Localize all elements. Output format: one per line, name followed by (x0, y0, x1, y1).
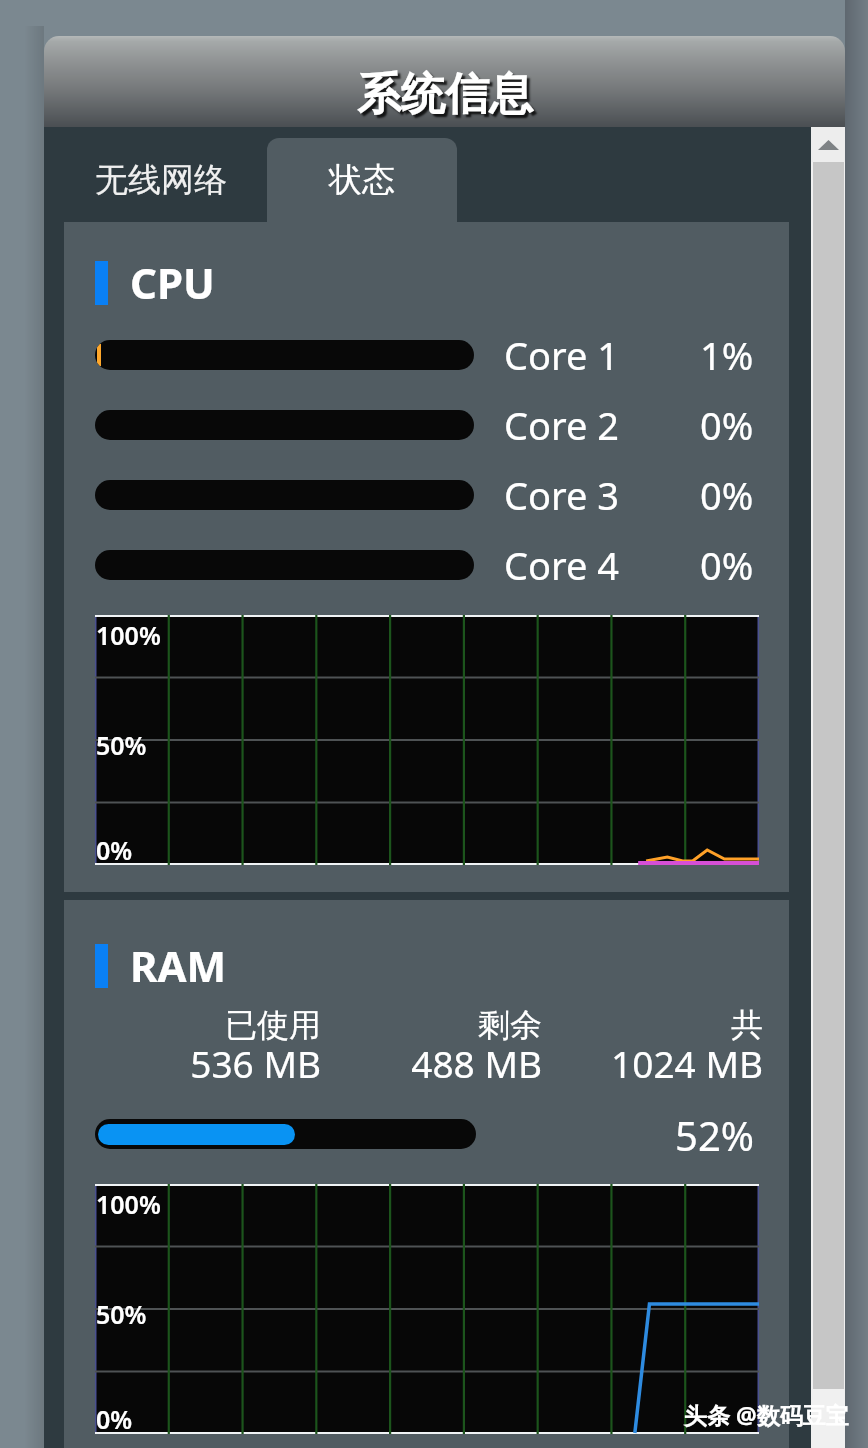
staticText: Core 1 (504, 329, 619, 381)
staticText: CPU (130, 254, 215, 311)
staticText: 状态 (329, 159, 395, 201)
staticText: 无线网络 (95, 159, 227, 201)
staticText: 0% (96, 1402, 133, 1434)
staticText: 1% (700, 329, 754, 381)
staticText: 0% (96, 833, 133, 865)
staticText: 0% (700, 539, 754, 591)
staticText: RAM (130, 937, 227, 994)
staticText: 共 (731, 1005, 763, 1045)
staticText: 52% (675, 1108, 754, 1156)
staticText: 0% (700, 399, 754, 451)
staticText: 536 MB (190, 1038, 321, 1088)
staticText: Core 4 (504, 539, 619, 591)
staticText: 已使用 (225, 1005, 321, 1045)
button[interactable]: Scroll up (811, 127, 845, 162)
staticText: 100% (96, 618, 161, 652)
staticText: 50% (96, 1297, 147, 1331)
staticText: 50% (96, 728, 147, 762)
staticText: 1024 MB (611, 1038, 763, 1088)
button[interactable]: 状态 (267, 138, 457, 222)
staticText: 488 MB (411, 1038, 542, 1088)
staticText: 100% (96, 1187, 161, 1221)
staticText: 0% (700, 469, 754, 521)
staticText: Core 2 (504, 399, 619, 451)
staticText: 头条 @数码豆宝 (684, 1399, 849, 1430)
staticText: 系统信息 (357, 67, 533, 122)
button[interactable]: 无线网络 (44, 138, 267, 222)
staticText: Core 3 (504, 469, 619, 521)
staticText: 剩余 (478, 1005, 542, 1045)
